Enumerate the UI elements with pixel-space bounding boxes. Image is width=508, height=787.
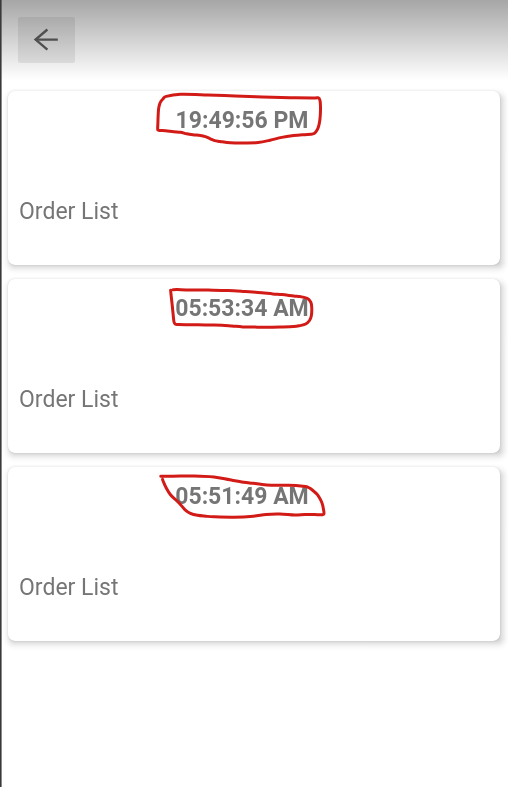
staticText: 05:53:34 AM (8, 295, 488, 322)
button[interactable]: Back (18, 17, 75, 63)
staticText: Order List (19, 574, 119, 601)
staticText: Order List (19, 198, 119, 225)
staticText: 05:51:49 AM (8, 483, 488, 510)
button[interactable]: 19:49:56 PM (8, 91, 500, 265)
button[interactable]: 05:53:34 AM (8, 279, 500, 453)
button[interactable]: 05:51:49 AM (8, 467, 500, 641)
staticText: Order List (19, 386, 119, 413)
staticText: 19:49:56 PM (8, 107, 488, 134)
